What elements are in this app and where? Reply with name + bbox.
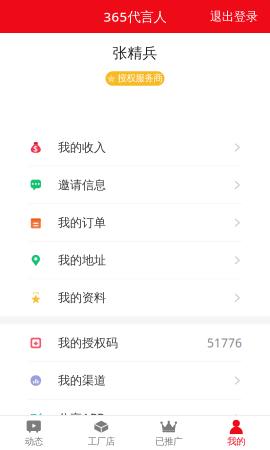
staticText: 我的地址 bbox=[58, 253, 106, 268]
button[interactable]: 我的渠道 bbox=[0, 362, 270, 399]
staticText: 365代言人 bbox=[103, 8, 166, 25]
button[interactable]: 分享APP bbox=[0, 400, 270, 437]
staticText: 退出登录 bbox=[210, 9, 258, 24]
staticText: 分享APP bbox=[58, 410, 104, 426]
staticText: 我的 bbox=[227, 436, 245, 447]
button[interactable]: 我的 bbox=[202, 416, 270, 450]
staticText: 51776 bbox=[207, 335, 242, 351]
button[interactable]: $ bbox=[0, 129, 270, 166]
staticText: 工厂店 bbox=[88, 436, 115, 447]
button[interactable]: 动态 bbox=[0, 416, 67, 450]
staticText: 我的授权码 bbox=[58, 336, 118, 350]
staticText: $ bbox=[33, 144, 38, 155]
button[interactable]: 我的订单 bbox=[0, 204, 270, 241]
staticText: 我的渠道 bbox=[58, 373, 106, 388]
button[interactable]: 我的资料 bbox=[0, 279, 270, 316]
button[interactable]: 工厂店 bbox=[67, 416, 135, 450]
button[interactable]: 我的地址 bbox=[0, 242, 270, 279]
staticText: 我的订单 bbox=[58, 215, 106, 230]
staticText: 邀请信息 bbox=[58, 178, 106, 192]
button[interactable]: 授权服务商 bbox=[105, 71, 164, 86]
staticText: 动态 bbox=[25, 436, 43, 447]
staticText: 我的收入 bbox=[58, 140, 106, 155]
button[interactable]: 我的授权码 bbox=[0, 324, 270, 361]
staticText: 已推广 bbox=[155, 436, 182, 447]
staticText: 授权服务商 bbox=[117, 72, 162, 84]
staticText: 我的资料 bbox=[58, 290, 106, 305]
staticText: 张精兵 bbox=[112, 44, 157, 62]
button[interactable]: 已推广 bbox=[135, 416, 202, 450]
button[interactable]: 邀请信息 bbox=[0, 167, 270, 203]
button[interactable]: 退出登录 bbox=[200, 2, 270, 31]
